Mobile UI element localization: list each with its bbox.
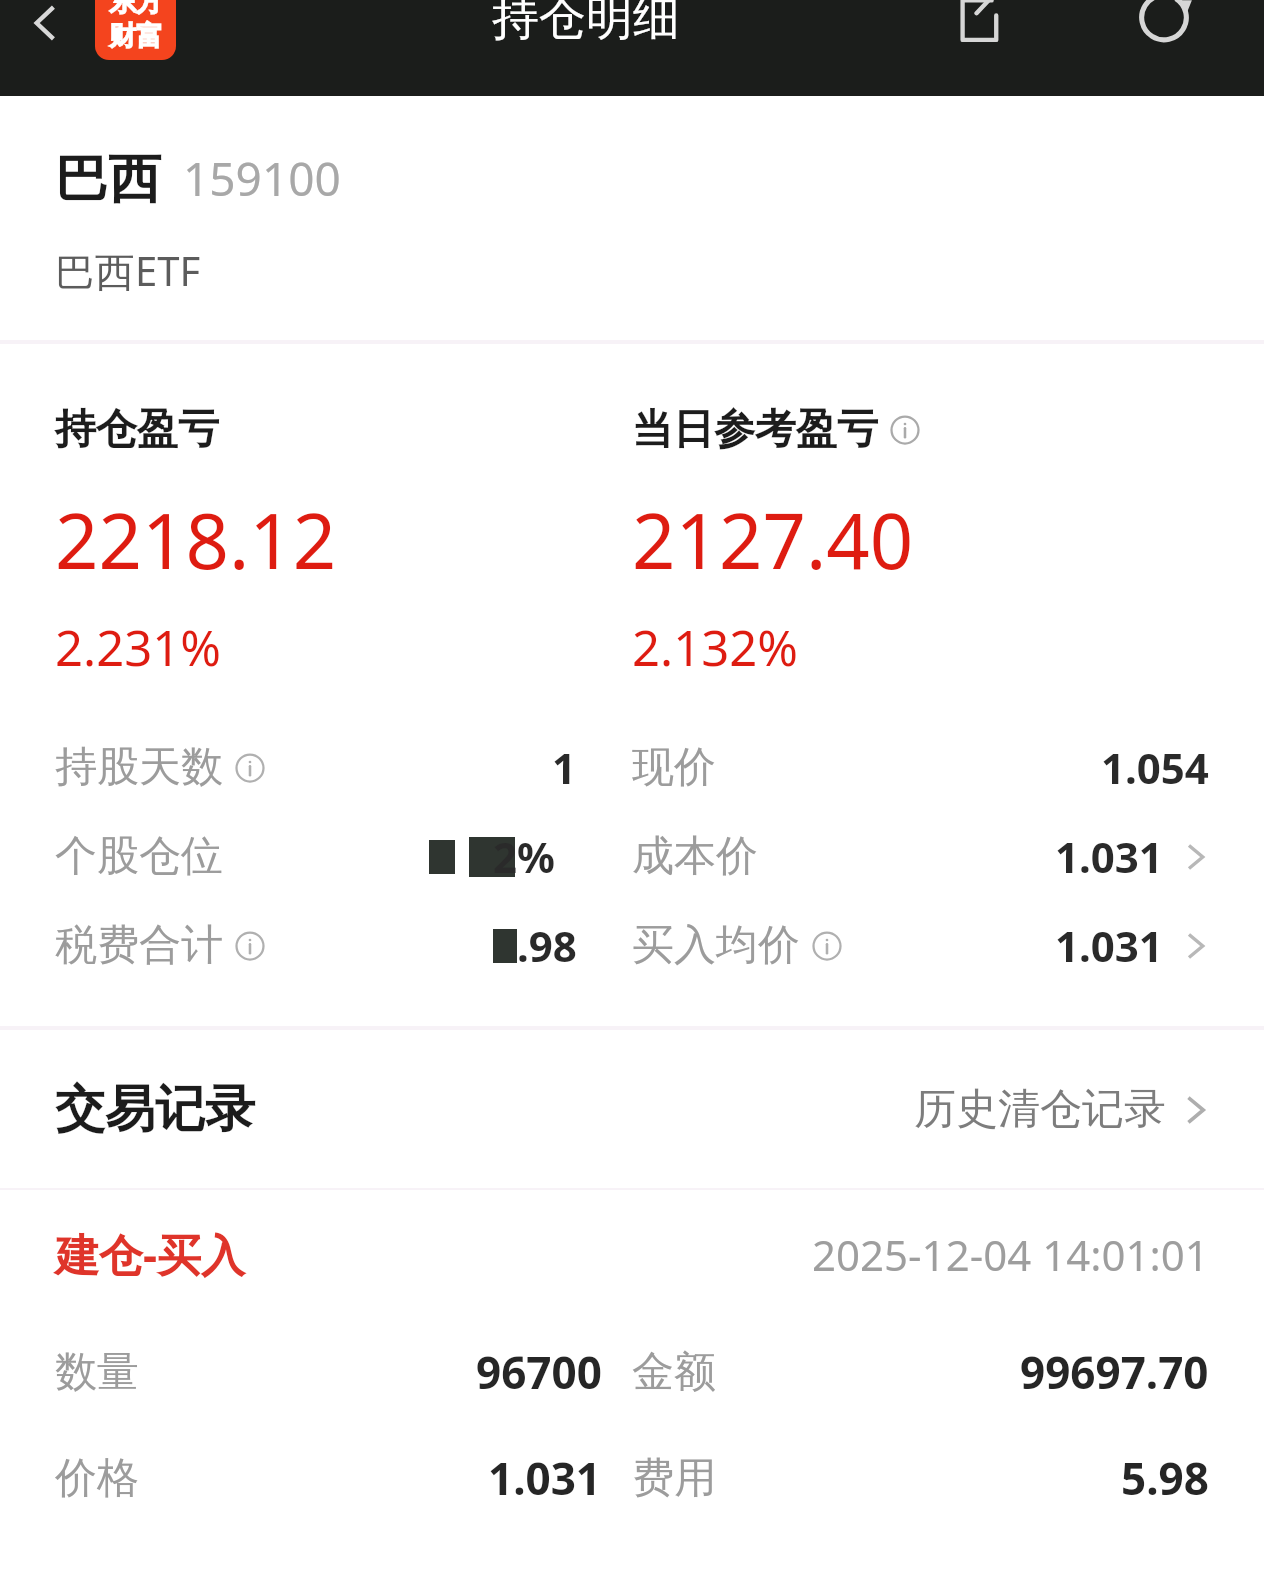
staticText: .98 [517, 917, 577, 974]
staticText: 2% [493, 828, 555, 885]
button[interactable]: 成本价 [632, 828, 1209, 885]
staticText: 1.031 [1055, 917, 1163, 974]
staticText: 2.132% [632, 614, 798, 681]
button[interactable]: Share [935, 0, 1025, 64]
staticText: 1 [552, 739, 577, 796]
staticText: 建仓-买入 [55, 1224, 246, 1284]
staticText: 历史清仓记录 [914, 1083, 1166, 1136]
staticText: 价格 [55, 1452, 139, 1505]
staticText: 成本价 [632, 830, 758, 883]
button[interactable]: 东方财富 [95, 0, 176, 60]
staticText: 持股天数 [55, 741, 223, 794]
button[interactable]: 个股仓位 [55, 828, 577, 885]
staticText: 1.054 [1101, 739, 1209, 796]
staticText: 巴西ETF [55, 243, 201, 298]
staticText: 2.231% [55, 614, 221, 681]
button[interactable]: Back [8, 0, 82, 60]
staticText: 持仓盈亏 [55, 404, 219, 456]
button[interactable]: 持股天数 [55, 739, 577, 796]
button[interactable]: 税费合计 [55, 917, 577, 974]
staticText: 当日参考盈亏 [632, 404, 878, 456]
staticText: 费用 [632, 1452, 716, 1505]
staticText: 1.031 [488, 1448, 602, 1508]
staticText: 持仓明细 [492, 0, 680, 48]
staticText: 1.031 [1055, 828, 1163, 885]
staticText: 买入均价 [632, 919, 800, 972]
staticText: 税费合计 [55, 919, 223, 972]
staticText: 个股仓位 [55, 830, 223, 883]
staticText: 巴西 [55, 146, 161, 213]
staticText: 数量 [55, 1346, 139, 1399]
staticText: 99697.70 [1020, 1342, 1209, 1402]
staticText: 5.98 [1121, 1448, 1209, 1508]
staticText: 2127.40 [632, 488, 914, 592]
button[interactable]: 历史清仓记录 [908, 1069, 1216, 1150]
staticText: 2218.12 [55, 488, 337, 592]
staticText: 现价 [632, 741, 716, 794]
button[interactable]: Refresh [1118, 0, 1210, 66]
staticText: 财富 [109, 19, 163, 53]
staticText: 2025-12-04 14:01:01 [812, 1226, 1209, 1283]
button[interactable]: 建仓-买入 [0, 1190, 1264, 1548]
staticText: 金额 [632, 1346, 716, 1399]
staticText: 96700 [476, 1342, 602, 1402]
staticText: 交易记录 [55, 1078, 255, 1141]
button[interactable]: 现价 [632, 739, 1209, 796]
button[interactable]: 买入均价 [632, 917, 1209, 974]
staticText: 东方 [109, 0, 163, 19]
staticText: 159100 [183, 147, 341, 210]
